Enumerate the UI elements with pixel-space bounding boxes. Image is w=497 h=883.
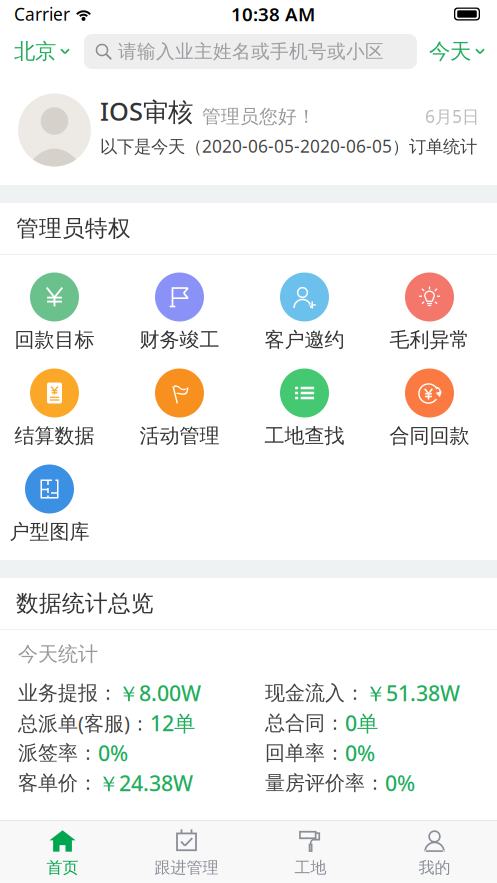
button[interactable]: 北京 (0, 28, 84, 75)
button[interactable]: 我的 (372, 821, 496, 883)
staticText: 请输入业主姓名或手机号或小区 (118, 40, 384, 63)
staticText: 活动管理 (139, 423, 219, 448)
staticText: 6月5日 (425, 105, 479, 128)
button[interactable]: 工地 (248, 821, 372, 883)
staticText: 以下是今天（2020-06-05-2020-06-05）订单统计 (100, 134, 477, 157)
staticText: 0% (345, 739, 375, 767)
button[interactable]: 首页 (0, 821, 124, 883)
staticText: ￥24.38W (98, 769, 193, 797)
staticText: 工地查找 (264, 423, 344, 448)
staticText: 我的 (418, 858, 450, 878)
staticText: 财务竣工 (139, 327, 219, 352)
staticText: 现金流入： (265, 681, 365, 705)
staticText: 总合同： (265, 711, 345, 735)
staticText: 结算数据 (14, 423, 94, 448)
staticText: 客单价： (18, 771, 98, 795)
staticText: 量房评价率： (265, 771, 385, 795)
staticText: 派签率： (18, 741, 98, 765)
button[interactable]: 工地查找 (242, 359, 367, 455)
staticText: 今天统计 (18, 642, 98, 666)
staticText: 首页 (46, 858, 78, 878)
button[interactable]: 客户邀约 (242, 263, 367, 359)
staticText: 总派单(客服)： (18, 710, 150, 736)
staticText: 数据统计总览 (16, 590, 154, 617)
staticText: 管理员特权 (16, 215, 131, 242)
staticText: 合同回款 (389, 423, 469, 448)
staticText: 北京 (14, 38, 56, 65)
staticText: 工地 (294, 858, 326, 878)
button[interactable]: 结算数据 (0, 359, 117, 455)
button[interactable]: 户型图库 (0, 455, 112, 551)
button[interactable]: 跟进管理 (124, 821, 248, 883)
staticText: 管理员您好！ (202, 105, 316, 128)
staticText: 0% (98, 739, 128, 767)
staticText: 回单率： (265, 741, 345, 765)
staticText: 毛利异常 (389, 327, 469, 352)
staticText: ￥8.00W (118, 679, 201, 707)
staticText: 12单 (150, 709, 195, 737)
staticText: 回款目标 (14, 327, 94, 352)
button[interactable]: 财务竣工 (117, 263, 242, 359)
button[interactable]: 活动管理 (117, 359, 242, 455)
staticText: 业务提报： (18, 681, 118, 705)
staticText: Carrier (14, 2, 70, 25)
staticText: 0单 (345, 709, 378, 737)
button[interactable]: 合同回款 (367, 359, 492, 455)
button[interactable]: 回款目标 (0, 263, 117, 359)
staticText: 跟进管理 (154, 858, 218, 878)
button[interactable]: 今天 (417, 28, 497, 75)
staticText: 今天 (429, 38, 471, 65)
staticText: 10:38 AM (231, 2, 315, 26)
staticText: IOS审核 (100, 94, 193, 128)
button[interactable]: 毛利异常 (367, 263, 492, 359)
staticText: ￥51.38W (365, 679, 460, 707)
staticText: 客户邀约 (264, 327, 344, 352)
staticText: 户型图库 (9, 519, 89, 544)
staticText: 0% (385, 769, 415, 797)
